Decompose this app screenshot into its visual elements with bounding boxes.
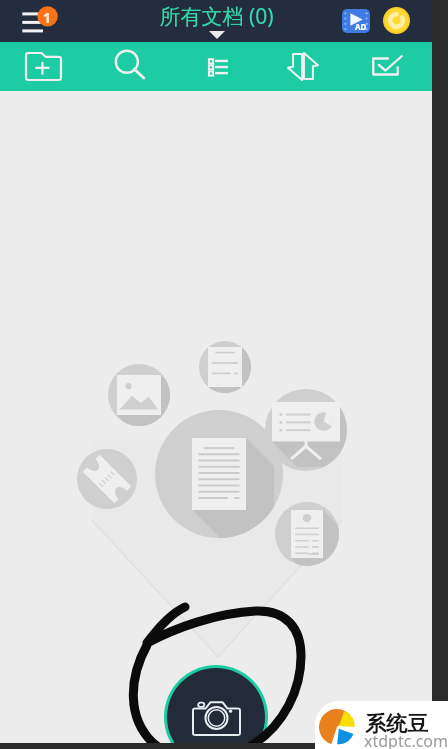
staticText: AD [355,21,367,32]
button[interactable]: Camera scan [164,665,268,749]
button[interactable]: New folder [0,42,87,91]
staticText: 所有文档 (0) [159,2,274,31]
button[interactable]: Coins [383,7,410,34]
button[interactable]: Search [87,42,174,91]
staticText: 1 [43,8,52,27]
button[interactable]: Sort [260,42,346,91]
button[interactable]: 所有文档 (0) [159,2,274,39]
staticText: 系统豆 [365,711,428,737]
staticText: xtdptc.com [364,730,448,749]
button[interactable]: Menu [0,0,62,42]
button[interactable]: Select all [346,42,432,91]
button[interactable]: List view [174,42,260,91]
button[interactable]: Advertisement [342,9,370,33]
